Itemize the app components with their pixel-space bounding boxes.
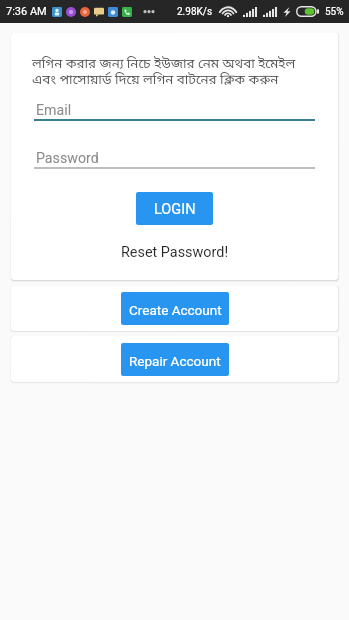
button[interactable]: Create Account [121,292,229,325]
staticText: Create Account [129,302,222,318]
staticText: Repair Account [129,353,221,369]
staticText: LOGIN [154,201,196,218]
button[interactable]: Reset Password! [11,241,338,263]
staticText: লগিন করার জন্য নিচে ইউজার নেম অথবা ইমেইল… [32,56,296,89]
button[interactable]: LOGIN [136,192,213,225]
staticText: ••• [143,5,156,19]
staticText: Email [36,102,72,119]
button[interactable]: Email [36,102,317,121]
button[interactable]: Repair Account [121,343,229,376]
button[interactable]: Password [36,150,317,169]
staticText: 55% [325,6,344,18]
staticText: 7:36 AM [6,5,47,18]
staticText: Reset Password! [121,244,229,261]
staticText: Password [36,150,99,167]
staticText: 2.98K/s [177,6,213,18]
